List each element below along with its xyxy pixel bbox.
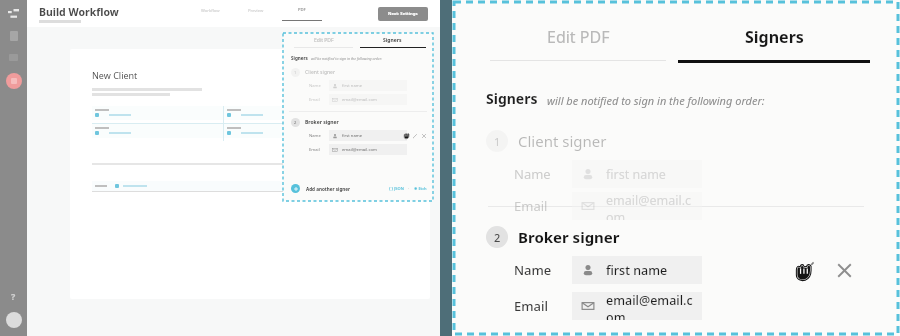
button[interactable]: Signers [358, 37, 427, 48]
staticText: Edit PDF [547, 26, 610, 48]
staticText: · [408, 186, 410, 191]
button[interactable]: Next: Settings [378, 7, 428, 21]
staticText: email@email.com [342, 97, 377, 103]
staticText: Broker signer [305, 119, 339, 126]
button[interactable]: Preview [233, 8, 279, 21]
staticText: Client signer [305, 69, 336, 76]
staticText: Build Workflow [39, 5, 119, 19]
staticText: will be notified to sign in the followin… [311, 56, 383, 61]
staticText: Name [309, 133, 329, 139]
button[interactable]: Add a PDF [363, 35, 393, 41]
staticText: Workflow [201, 8, 220, 14]
staticText: Email [514, 197, 564, 215]
staticText: 1 [294, 70, 297, 75]
staticText: Signers [291, 55, 308, 61]
staticText: first name [606, 166, 666, 183]
button[interactable]: Grid view [405, 33, 416, 44]
button[interactable]: PDF [279, 7, 325, 21]
button[interactable]: Profile [6, 73, 22, 89]
staticText: Signers [745, 26, 804, 48]
staticText: will be notified to sign in the followin… [547, 93, 765, 108]
staticText: email@email.com [606, 292, 693, 320]
staticText: Email [514, 297, 564, 315]
button[interactable]: Workflow [187, 8, 233, 21]
staticText: Broker signer [518, 227, 620, 247]
staticText: first name [342, 83, 363, 89]
staticText: email@email.com [342, 147, 377, 153]
button[interactable]: { } JSON [389, 186, 404, 191]
button[interactable]: ? [11, 290, 16, 302]
staticText: Edit PDF [314, 37, 334, 44]
staticText: first name [606, 262, 668, 279]
button[interactable]: Account [6, 312, 22, 328]
button[interactable]: Edit PDF [289, 37, 358, 48]
button[interactable]: Edit PDF [480, 26, 676, 61]
staticText: 2 [294, 120, 297, 125]
staticText: 2 [494, 230, 501, 245]
button[interactable]: Edit signer [790, 257, 816, 283]
button[interactable]: Add another signer [306, 186, 351, 192]
staticText: 1 [494, 134, 501, 149]
other: Workflow [8, 9, 19, 20]
staticText: Signers [383, 37, 402, 44]
staticText: Name [514, 261, 564, 279]
staticText: email@email.com [606, 192, 693, 220]
staticText: Signers [486, 89, 538, 108]
staticText: Add a PDF [372, 35, 393, 41]
staticText: Email [309, 97, 329, 103]
staticText: Preview [248, 8, 264, 14]
staticText: Next: Settings [388, 11, 418, 17]
staticText: first name [342, 133, 363, 139]
button[interactable]: Remove signer [832, 258, 856, 282]
staticText: Client signer [518, 131, 607, 151]
staticText: Name [514, 165, 564, 183]
staticText: PDF [298, 7, 306, 13]
staticText: Name [309, 83, 329, 89]
staticText: New Client [92, 69, 138, 81]
button[interactable]: ✸ Etch [414, 186, 427, 191]
staticText: Email [309, 147, 329, 153]
button[interactable]: Signers [676, 26, 872, 63]
